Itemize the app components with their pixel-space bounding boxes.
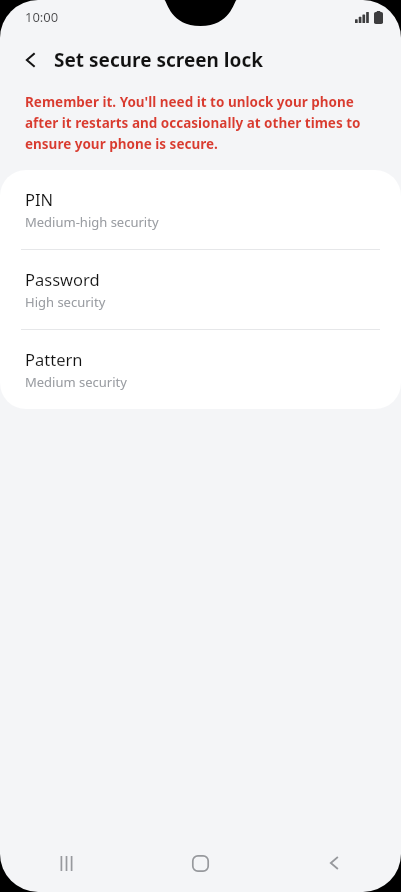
staticText: Remember it. You'll need it to unlock yo…: [25, 93, 381, 153]
staticText: Set secure screen lock: [54, 47, 263, 73]
button[interactable]: Recents: [0, 834, 133, 892]
staticText: Pattern: [25, 348, 83, 370]
staticText: Medium security: [25, 373, 127, 391]
staticText: High security: [25, 293, 106, 311]
staticText: 10:00: [25, 8, 59, 26]
staticText: PIN: [25, 188, 54, 210]
staticText: Medium-high security: [25, 213, 159, 231]
button[interactable]: PIN: [0, 170, 401, 249]
button[interactable]: Password: [0, 250, 401, 329]
button[interactable]: Back: [267, 834, 401, 892]
staticText: Password: [25, 268, 100, 290]
button[interactable]: Home: [133, 834, 267, 892]
button[interactable]: Back: [14, 43, 48, 77]
button[interactable]: Pattern: [0, 330, 401, 409]
